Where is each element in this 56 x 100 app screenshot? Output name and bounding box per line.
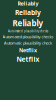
- staticText: Netflix: [16, 55, 39, 64]
- staticText: Automated plausibility checks: [8, 30, 48, 33]
- staticText: Reliably: [12, 18, 43, 28]
- staticText: Netflix: [19, 47, 37, 54]
- staticText: Reliably: [15, 8, 41, 17]
- staticText: Automated plausibility checks: [2, 34, 53, 39]
- staticText: Reliably: [17, 0, 38, 7]
- staticText: Automatic plausibility check: [4, 40, 52, 46]
